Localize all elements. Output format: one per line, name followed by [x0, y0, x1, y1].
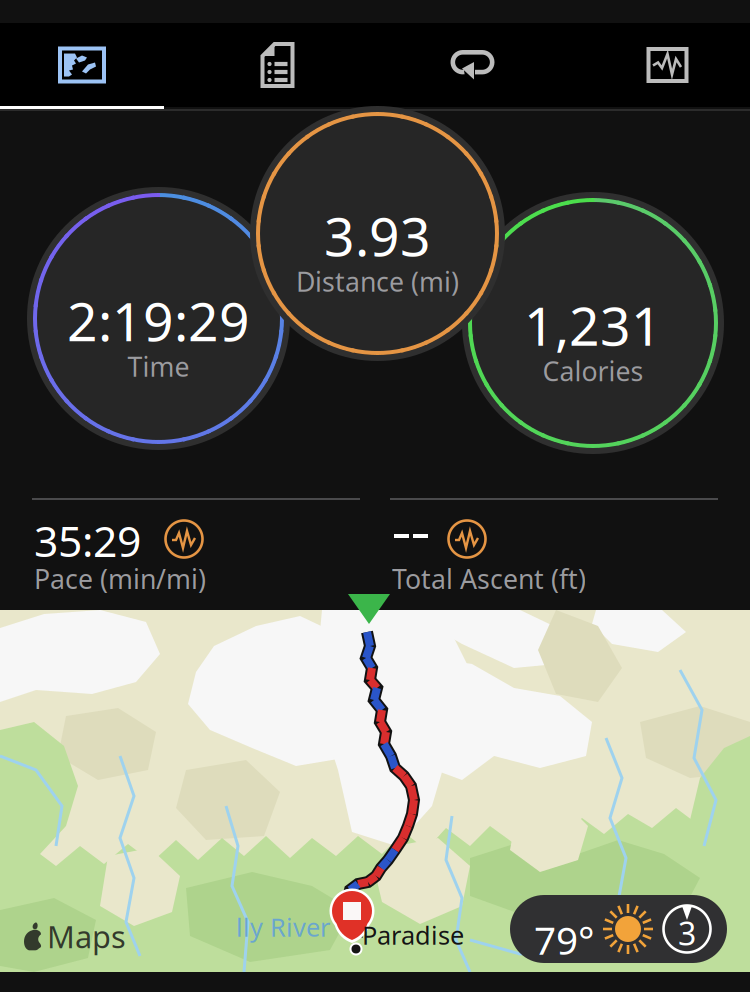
staticText: 1,231	[524, 290, 662, 360]
staticText: Calories	[542, 353, 643, 389]
staticText: Paradise	[362, 918, 464, 952]
staticText: 3	[678, 912, 696, 954]
button[interactable]: Details	[180, 23, 375, 107]
button[interactable]: Map	[0, 23, 164, 107]
staticText: Distance (mi)	[296, 264, 459, 299]
staticText: 3.93	[324, 200, 431, 271]
staticText: Pace (min/mi)	[34, 561, 206, 596]
staticText: Total Ascent (ft)	[392, 561, 586, 596]
button[interactable]: Splits	[375, 23, 570, 107]
staticText: 35:29	[34, 512, 141, 569]
button[interactable]: Charts	[570, 23, 750, 107]
staticText: lly River	[236, 910, 330, 944]
button[interactable]: Weather, 79 degrees, UV index 3	[510, 895, 727, 963]
staticText: 79°	[534, 914, 595, 965]
staticText: 2:19:29	[67, 285, 250, 356]
staticText: Time	[127, 349, 189, 384]
staticText: Maps	[47, 916, 126, 957]
